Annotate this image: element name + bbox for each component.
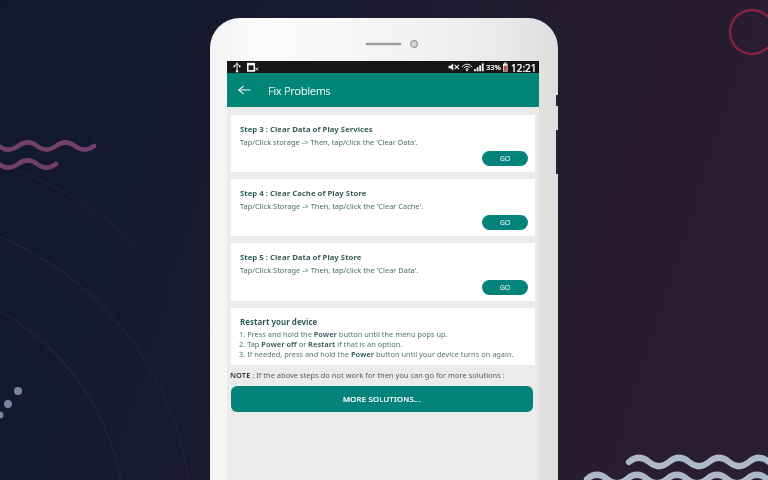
button[interactable]: Step 4 : Clear Cache of Play Store: [231, 179, 535, 236]
button[interactable]: GO: [482, 280, 528, 295]
staticText: 3. If needed, press and hold the Power b…: [239, 349, 514, 359]
button[interactable]: Step 5 : Clear Data of Play Store: [231, 243, 535, 301]
staticText: 1. Press and hold the Power button until…: [239, 329, 448, 339]
staticText: Tap/Click storage -> Then, tap/click the…: [240, 137, 418, 147]
button[interactable]: GO: [482, 151, 528, 166]
staticText: 2. Tap Power off or Restart if that is a…: [239, 339, 403, 349]
staticText: GO: [500, 154, 511, 163]
staticText: 12:21: [511, 61, 537, 73]
staticText: GO: [500, 283, 511, 292]
button[interactable]: GO: [482, 215, 528, 230]
staticText: GO: [500, 218, 511, 227]
staticText: Tap/Click Storage -> Then, tap/click the…: [240, 201, 424, 211]
staticText: NOTE : If the above steps do not work fo…: [230, 370, 505, 380]
staticText: Restart your device: [240, 316, 318, 327]
staticText: Step 4 : Clear Cache of Play Store: [240, 188, 367, 199]
staticText: 33%: [486, 62, 501, 72]
button[interactable]: Step 3 : Clear Data of Play Services: [231, 115, 535, 172]
staticText: Step 3 : Clear Data of Play Services: [240, 124, 373, 135]
staticText: Step 5 : Clear Data of Play Store: [240, 252, 362, 263]
button[interactable]: MORE SOLUTIONS...: [231, 386, 533, 412]
button[interactable]: Back: [227, 73, 261, 107]
staticText: Fix Problems: [268, 83, 331, 98]
staticText: Tap/Click Storage -> Then, tap/click the…: [240, 265, 419, 275]
staticText: MORE SOLUTIONS...: [343, 394, 422, 404]
